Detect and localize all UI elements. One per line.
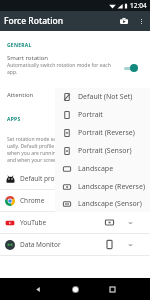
button[interactable]: Default profile bbox=[0, 168, 150, 189]
staticText: Automatically switch rotation mode for e… bbox=[7, 62, 119, 75]
button[interactable]: Portrait (Sensor) bbox=[55, 142, 150, 160]
staticText: YouTube bbox=[20, 218, 105, 227]
button[interactable]: Data Monitor bbox=[0, 234, 150, 255]
staticText: APPS bbox=[7, 116, 21, 123]
button[interactable]: Store bbox=[115, 12, 133, 30]
button[interactable]: Default (Not Set) bbox=[55, 88, 150, 106]
staticText: Portrait (Sensor) bbox=[78, 146, 132, 156]
staticText: Chrome bbox=[20, 196, 105, 205]
button[interactable]: Landscape (Reverse) bbox=[55, 178, 150, 196]
button[interactable]: Chrome bbox=[0, 190, 150, 211]
button[interactable]: Portrait bbox=[55, 106, 150, 124]
staticText: Portrait bbox=[78, 110, 103, 120]
button[interactable]: Landscape bbox=[55, 160, 150, 178]
staticText: Set rotation mode each application indiv… bbox=[7, 136, 147, 164]
staticText: Attention bbox=[7, 91, 34, 99]
button[interactable]: Home bbox=[65, 279, 86, 300]
button[interactable]: YouTube bbox=[0, 212, 150, 233]
button[interactable]: Back bbox=[27, 279, 48, 300]
staticText: Smart rotation bbox=[7, 54, 49, 62]
staticText: Data Monitor bbox=[20, 240, 105, 249]
button[interactable]: Portrait (Reverse) bbox=[55, 124, 150, 142]
staticText: Landscape bbox=[78, 164, 114, 174]
staticText: Force Rotation bbox=[4, 15, 64, 27]
button[interactable]: More options bbox=[133, 13, 149, 29]
staticText: Default (Not Set) bbox=[78, 92, 133, 102]
staticText: Portrait (Reverse) bbox=[78, 128, 135, 138]
button[interactable]: Smart rotation bbox=[0, 51, 150, 77]
staticText: 12:04 bbox=[130, 1, 147, 10]
staticText: Landscape (Reverse) bbox=[78, 182, 145, 192]
staticText: Default profile bbox=[20, 174, 105, 183]
button[interactable] bbox=[124, 63, 138, 73]
staticText: GENERAL bbox=[7, 42, 32, 49]
staticText: Landscape (Sensor) bbox=[78, 199, 142, 209]
button[interactable]: Recents bbox=[102, 279, 123, 300]
button[interactable]: Landscape (Sensor) bbox=[55, 196, 150, 212]
